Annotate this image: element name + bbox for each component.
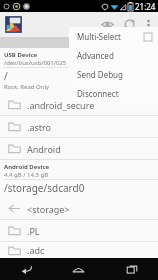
button[interactable]: Send Debug — [69, 65, 158, 84]
button[interactable]: App icon — [4, 15, 23, 34]
staticText: USB Device — [4, 51, 38, 59]
button[interactable]: Recent apps — [105, 258, 158, 280]
button[interactable]: More options — [140, 12, 156, 37]
button[interactable]: Multi-Select — [69, 27, 158, 46]
staticText: Send Debug — [77, 69, 152, 80]
staticText: Multi-Select — [77, 31, 144, 42]
staticText: / — [4, 69, 8, 83]
staticText: .android_secure — [27, 99, 95, 111]
staticText: 4.4 gB / 14.3 gB — [4, 171, 49, 179]
button[interactable]: Back — [0, 258, 52, 280]
staticText: Advanced — [77, 50, 152, 61]
button[interactable]: .PL — [0, 220, 158, 242]
button[interactable]: <storage> — [0, 198, 158, 220]
button[interactable]: .astro — [0, 116, 158, 138]
staticText: .astro — [27, 121, 52, 133]
staticText: /storage/sdcard0 — [4, 181, 85, 195]
staticText: Android — [27, 143, 61, 155]
button[interactable]: Refresh — [118, 12, 140, 37]
staticText: <storage> — [27, 203, 70, 215]
button[interactable]: .android_secure — [0, 94, 158, 116]
staticText: Disconnect — [77, 88, 152, 99]
button[interactable]: Android — [0, 138, 158, 160]
button[interactable]: Disconnect — [69, 84, 158, 103]
button[interactable]: Show hidden — [96, 12, 118, 37]
staticText: /dev/bus/usb/001/025 — [4, 59, 67, 67]
staticText: .PL — [27, 225, 40, 237]
staticText: Root, Read Only — [4, 83, 50, 91]
button[interactable]: Advanced — [69, 46, 158, 65]
button[interactable]: .adc — [0, 242, 158, 258]
staticText: Android Device — [4, 163, 50, 171]
button[interactable]: Home — [52, 258, 105, 280]
staticText: .adc — [27, 244, 45, 256]
staticText: 21:24 — [135, 1, 156, 12]
